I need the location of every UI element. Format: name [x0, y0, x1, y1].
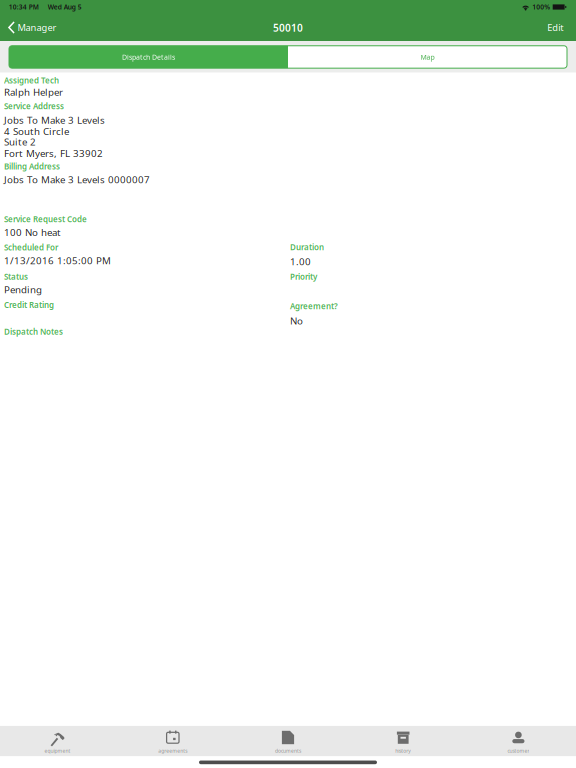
- staticText: 50010: [273, 21, 303, 35]
- staticText: Service Address: [4, 101, 64, 112]
- staticText: agreements: [158, 747, 187, 754]
- staticText: Suite 2: [4, 135, 36, 148]
- staticText: Assigned Tech: [4, 75, 59, 86]
- staticText: 4 South Circle: [4, 124, 69, 138]
- button[interactable]: history: [346, 726, 461, 756]
- staticText: 100 No heat: [4, 226, 61, 239]
- staticText: 1.00: [290, 255, 311, 268]
- staticText: Edit: [547, 21, 563, 34]
- staticText: No: [290, 314, 303, 327]
- staticText: Credit Rating: [4, 299, 54, 310]
- staticText: Dispatch Notes: [4, 326, 63, 337]
- staticText: Priority: [290, 271, 317, 282]
- staticText: Agreement?: [290, 301, 338, 312]
- staticText: Wed Aug 5: [48, 2, 82, 12]
- button[interactable]: customer: [461, 726, 576, 756]
- button[interactable]: documents: [230, 726, 346, 756]
- staticText: equipment: [45, 747, 71, 754]
- staticText: Jobs To Make 3 Levels 0000007: [4, 173, 150, 186]
- staticText: Billing Address: [4, 161, 60, 172]
- button[interactable]: Edit: [536, 14, 576, 41]
- staticText: 100%: [532, 2, 550, 12]
- staticText: Fort Myers, FL 33902: [4, 147, 103, 160]
- staticText: customer: [507, 747, 529, 754]
- staticText: Scheduled For: [4, 242, 58, 253]
- staticText: Manager: [17, 21, 56, 34]
- staticText: Jobs To Make 3 Levels: [4, 113, 105, 127]
- staticText: Pending: [4, 283, 42, 296]
- button[interactable]: agreements: [115, 726, 230, 756]
- staticText: 1/13/2016 1:05:00 PM: [4, 254, 111, 267]
- staticText: history: [395, 747, 411, 754]
- staticText: Status: [4, 271, 28, 282]
- staticText: 10:34 PM: [9, 2, 39, 12]
- staticText: Ralph Helper: [4, 85, 63, 99]
- staticText: Dispatch Details: [122, 52, 175, 62]
- button[interactable]: equipment: [0, 726, 115, 756]
- staticText: Service Request Code: [4, 214, 87, 224]
- button[interactable]: Map: [288, 46, 567, 68]
- staticText: documents: [275, 747, 301, 754]
- staticText: Duration: [290, 242, 324, 253]
- button[interactable]: Manager: [0, 14, 64, 41]
- button[interactable]: Dispatch Details: [9, 46, 288, 68]
- staticText: Map: [420, 52, 434, 62]
